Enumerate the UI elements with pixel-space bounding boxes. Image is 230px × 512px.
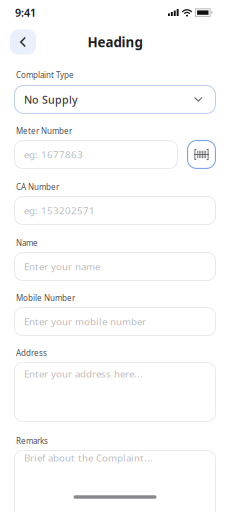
staticText: 9:41 <box>15 5 36 20</box>
staticText: Meter Number <box>16 126 72 136</box>
staticText: Mobile Number <box>16 293 75 303</box>
staticText: Address <box>16 348 47 358</box>
staticText: Name <box>16 238 38 248</box>
staticText: Brief about the Complaint... <box>24 451 153 464</box>
staticText: Enter your name <box>24 260 100 273</box>
staticText: Remarks <box>16 436 48 446</box>
staticText: No Supply <box>24 92 78 107</box>
staticText: CA Number <box>16 182 59 192</box>
staticText: Complaint Type <box>16 70 74 80</box>
staticText: eg: 153202571 <box>24 204 95 217</box>
button[interactable]: No Supply <box>14 85 216 114</box>
staticText: Heading <box>87 33 142 51</box>
button[interactable]: Scan meter barcode <box>187 140 216 169</box>
staticText: Enter your mobile number <box>24 315 146 328</box>
staticText: Enter your address here... <box>24 367 143 380</box>
button[interactable]: Back <box>10 29 36 54</box>
staticText: eg: 1677863 <box>24 148 83 161</box>
